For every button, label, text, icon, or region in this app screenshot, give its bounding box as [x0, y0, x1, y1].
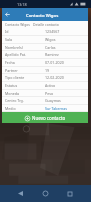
staticText: Partner: [5, 68, 18, 73]
staticText: 13:18: [17, 2, 27, 7]
button[interactable]: Back: [12, 185, 29, 202]
button[interactable]: Recents: [61, 185, 78, 202]
staticText: Moneda: [5, 91, 19, 96]
button[interactable]: Home: [37, 185, 54, 202]
staticText: Id: [5, 29, 9, 34]
button[interactable]: Tipo cliente: [2, 74, 88, 82]
button[interactable]: Nuevo contacto: [2, 112, 88, 123]
staticText: Estatus: [5, 83, 18, 88]
button[interactable]: Sala: [2, 36, 88, 44]
button[interactable]: Estatus: [2, 82, 88, 90]
button[interactable]: Centro Trg.: [2, 97, 88, 105]
button[interactable]: Partner: [2, 67, 88, 74]
staticText: Peso: [45, 91, 54, 96]
button[interactable]: Back: [2, 8, 12, 21]
staticText: 19: [45, 68, 50, 73]
staticText: Medio: [5, 106, 16, 111]
button[interactable]: Contacto Wigos: [5, 22, 30, 27]
button[interactable]: Moneda: [2, 90, 88, 97]
staticText: Contacto Wigos: [26, 12, 59, 18]
staticText: Nuevo contacto: [32, 115, 66, 121]
staticText: Carlos: [45, 45, 56, 50]
button[interactable]: Medio: [2, 105, 88, 112]
staticText: Fecha: [5, 60, 15, 65]
staticText: Centro Trg.: [5, 98, 24, 103]
staticText: Nombre(s): [5, 45, 23, 50]
staticText: Apellido Pat.: [5, 52, 27, 57]
staticText: Detalle contacto: [33, 22, 59, 27]
staticText: 1234567: [45, 29, 60, 34]
staticText: Sala: [5, 37, 12, 42]
staticText: 12-02-2020: [45, 75, 64, 80]
staticText: 07-01-2020: [45, 60, 64, 65]
button[interactable]: Nombre(s): [2, 44, 88, 51]
staticText: Guaymas: [45, 98, 61, 103]
button[interactable]: Apellido Pat.: [2, 51, 88, 59]
staticText: Contacto Wigos: [5, 22, 30, 27]
button[interactable]: Id: [2, 28, 88, 36]
staticText: Sur Tabernas: [45, 106, 68, 111]
staticText: Tipo cliente: [5, 75, 25, 80]
staticText: Activo: [45, 83, 56, 88]
staticText: Wigos: [45, 37, 56, 42]
button[interactable]: Fecha: [2, 59, 88, 67]
staticText: Ramirez: [45, 52, 59, 57]
button[interactable]: Detalle contacto: [33, 22, 59, 27]
